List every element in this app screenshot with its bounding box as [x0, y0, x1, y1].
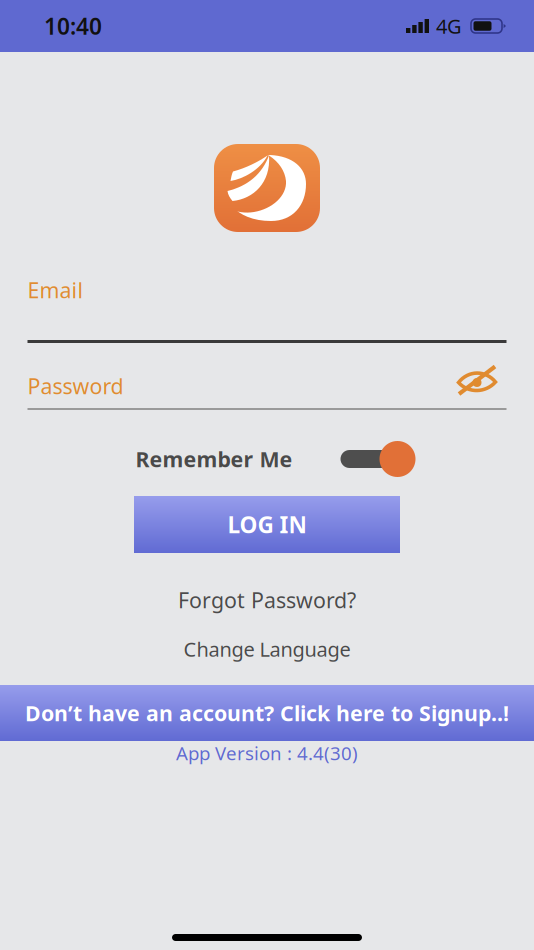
button[interactable]: Don’t have an account? Click here to Sig…	[0, 685, 534, 741]
staticText: Don’t have an account? Click here to Sig…	[25, 699, 509, 727]
staticText: Change Language	[183, 636, 350, 662]
staticText: 4G	[436, 13, 462, 39]
staticText: Email	[27, 276, 83, 304]
button[interactable]: Toggle password visibility	[456, 365, 506, 407]
staticText: 10:40	[44, 11, 102, 41]
staticText: Forgot Password?	[178, 586, 356, 614]
staticText: Remember Me	[135, 445, 292, 473]
button[interactable]: Remember Me	[340, 441, 415, 477]
staticText: Password	[27, 372, 123, 400]
staticText: LOG IN	[227, 509, 306, 539]
button[interactable]: Change Language	[183, 636, 350, 662]
button[interactable]: LOG IN	[134, 496, 400, 553]
staticText: App Version : 4.4(30)	[176, 741, 358, 765]
button[interactable]: Forgot Password?	[178, 586, 356, 614]
